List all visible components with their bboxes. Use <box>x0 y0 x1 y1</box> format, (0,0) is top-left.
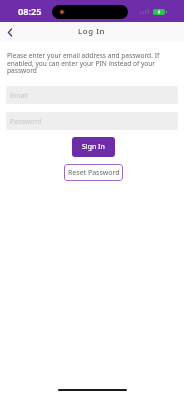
button[interactable]: Back <box>1 23 19 41</box>
staticText: Log In <box>78 26 106 37</box>
button[interactable]: Sign In <box>72 137 115 157</box>
button[interactable]: Reset Password <box>64 164 123 181</box>
staticText: Email <box>10 91 28 101</box>
staticText: 08:25 <box>18 5 42 18</box>
button[interactable]: Password <box>6 112 178 130</box>
staticText: Reset Password <box>68 168 120 178</box>
staticText: Password <box>10 117 42 127</box>
staticText: Please enter your email address and pass… <box>7 51 175 75</box>
staticText: Sign In <box>82 142 105 152</box>
